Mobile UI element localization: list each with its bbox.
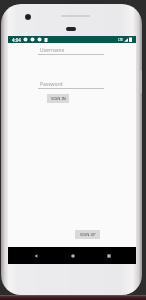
button[interactable]: Password [40,80,106,88]
button[interactable]: Username [40,46,106,54]
button[interactable]: Recent apps [100,247,117,264]
staticText: 4:04 [12,37,21,43]
staticText: Password [40,81,63,88]
staticText: SIGN IN [51,96,66,101]
staticText: Username [40,47,65,54]
button[interactable]: Home [64,247,81,264]
staticText: SIGN UP [80,232,96,237]
button[interactable]: SIGN IN [47,94,69,103]
button[interactable]: Back [27,247,44,264]
button[interactable]: SIGN UP [75,230,100,239]
staticText: LTE [118,38,123,42]
